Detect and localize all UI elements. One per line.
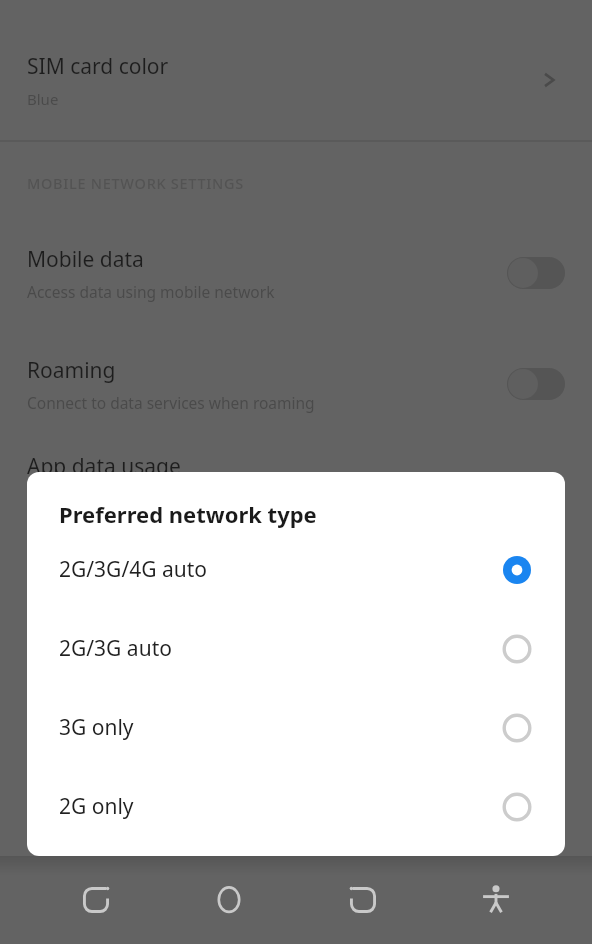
staticText: 2G/3G/4G auto: [59, 555, 502, 584]
staticText: Mobile data: [27, 245, 144, 274]
staticText: 2G only: [59, 792, 502, 821]
staticText: Access data using mobile network: [27, 281, 275, 302]
staticText: Preferred network type: [59, 499, 317, 529]
staticText: Roaming: [27, 356, 116, 385]
staticText: App data usage: [27, 452, 181, 481]
button[interactable]: 2G/3G auto: [27, 609, 565, 688]
button[interactable]: Roaming: [507, 368, 565, 400]
button[interactable]: SIM card color: [0, 0, 592, 140]
staticText: MOBILE NETWORK SETTINGS: [27, 173, 244, 193]
button[interactable]: 2G only: [27, 767, 565, 846]
staticText: 3G only: [59, 713, 502, 742]
button[interactable]: Accessibility: [458, 862, 534, 938]
button[interactable]: Home: [191, 862, 267, 938]
button[interactable]: 3G only: [27, 688, 565, 767]
button[interactable]: Back: [325, 862, 401, 938]
button[interactable]: Mobile data: [0, 225, 592, 321]
button[interactable]: Roaming: [0, 336, 592, 432]
button[interactable]: 2G/3G/4G auto: [27, 530, 565, 609]
staticText: Connect to data services when roaming: [27, 392, 315, 413]
staticText: Blue: [27, 89, 59, 109]
button[interactable]: Recent apps: [58, 862, 134, 938]
staticText: SIM card color: [27, 52, 169, 81]
button[interactable]: Mobile data: [507, 257, 565, 289]
staticText: 2G/3G auto: [59, 634, 502, 663]
